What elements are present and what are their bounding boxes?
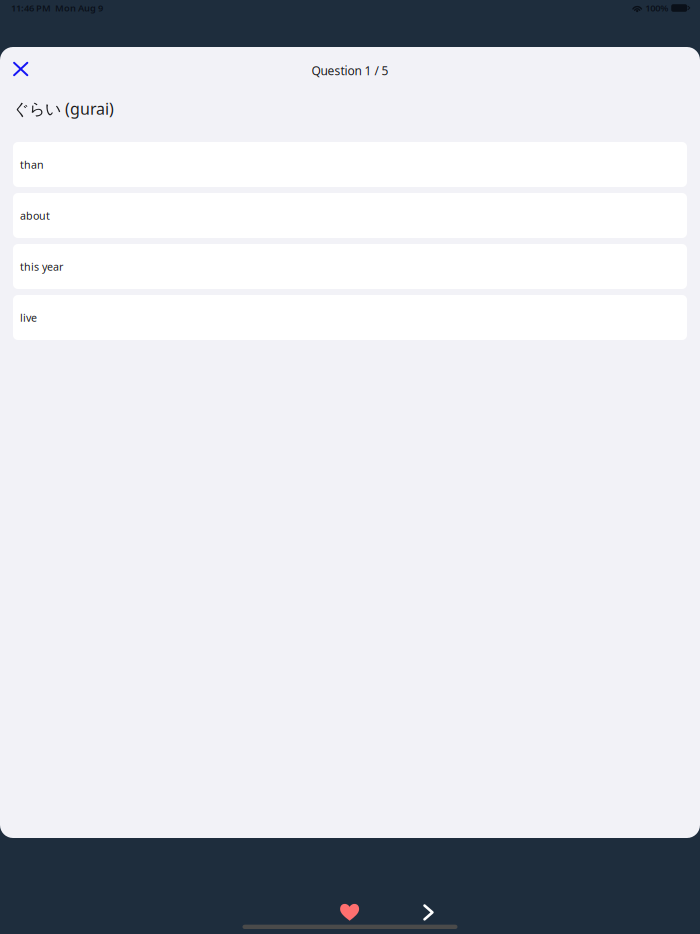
button[interactable]: live xyxy=(13,295,687,340)
staticText: Mon Aug 9 xyxy=(55,2,103,14)
staticText: live xyxy=(20,310,37,325)
staticText: Question 1 / 5 xyxy=(311,62,388,78)
button[interactable]: Next xyxy=(415,888,442,921)
staticText: ぐらい (gurai) xyxy=(13,98,114,119)
staticText: than xyxy=(20,157,44,172)
staticText: this year xyxy=(20,259,63,274)
button[interactable]: Close xyxy=(0,50,40,85)
button[interactable]: Favorite xyxy=(332,888,367,921)
staticText: 11:46 PM xyxy=(11,2,51,14)
button[interactable]: about xyxy=(13,193,687,238)
staticText: 100% xyxy=(645,2,668,14)
button[interactable]: than xyxy=(13,142,687,187)
staticText: about xyxy=(20,208,50,223)
button[interactable]: this year xyxy=(13,244,687,289)
